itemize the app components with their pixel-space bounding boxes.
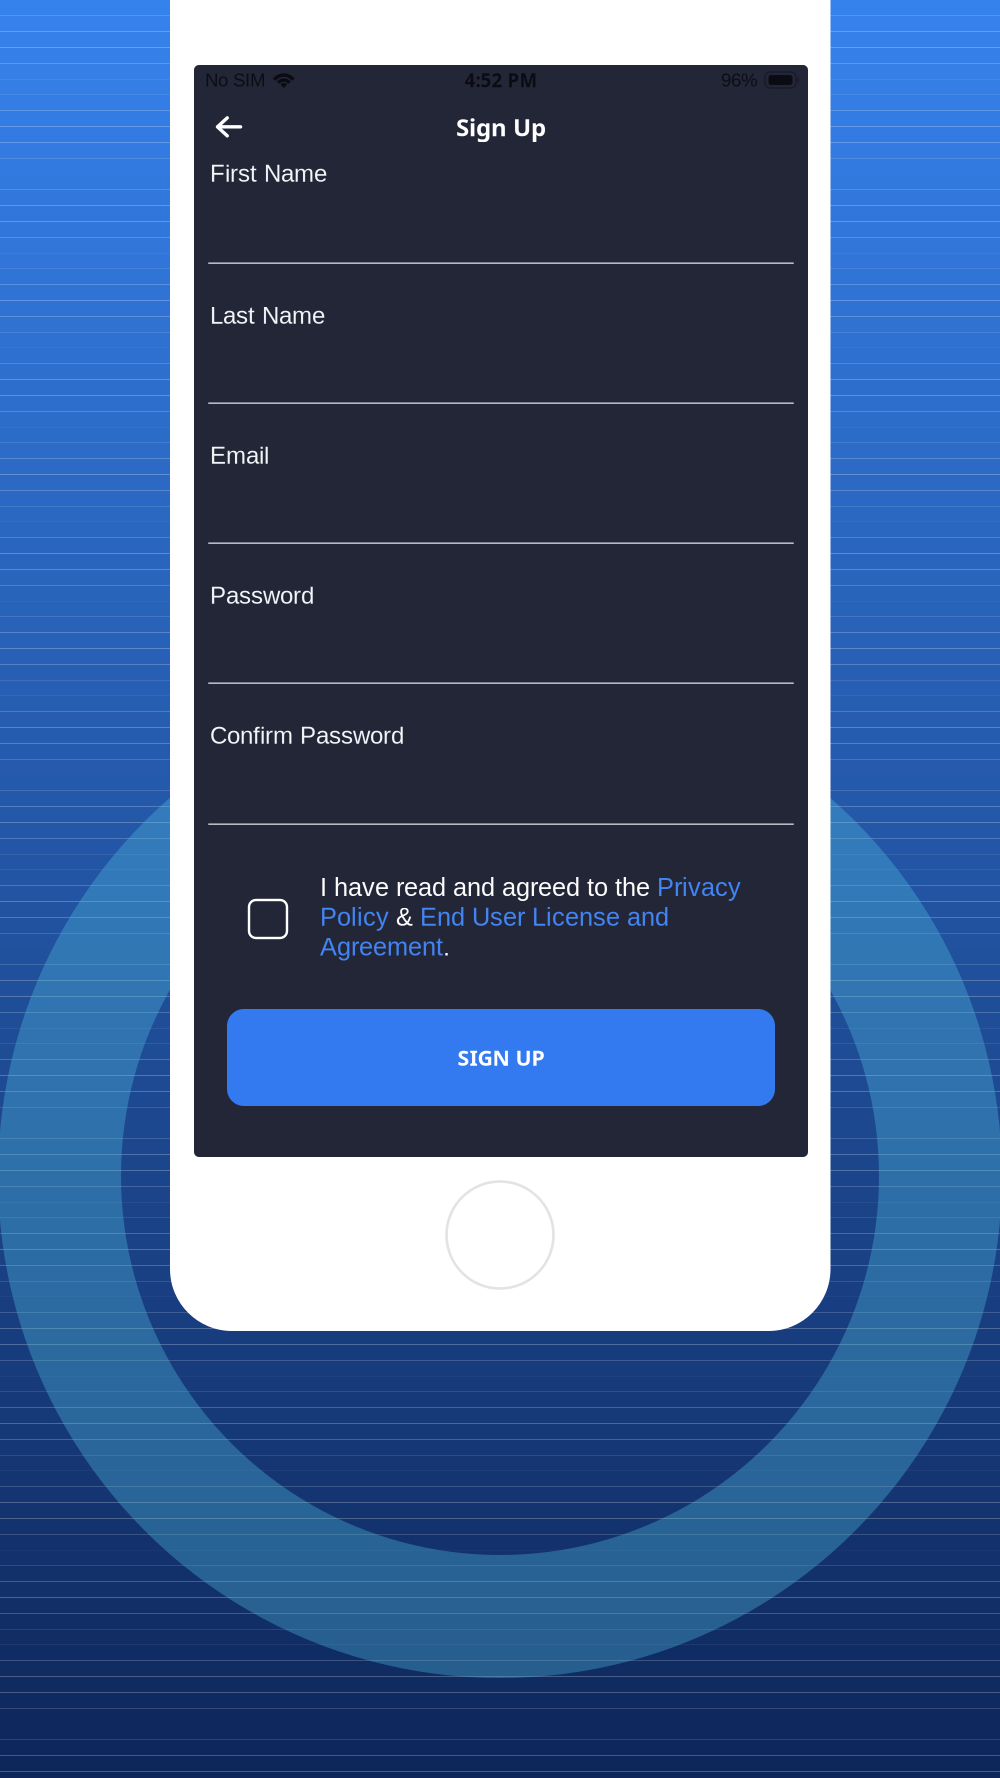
button[interactable]: Back (194, 105, 252, 149)
button[interactable]: Accept the privacy policy and licence ag… (194, 825, 320, 952)
staticText: Privacy (657, 873, 741, 901)
staticText: 4:52 PM (464, 67, 537, 93)
staticText: Last Name (210, 302, 325, 329)
staticText: Confirm Password (210, 722, 404, 749)
staticText: 96% (721, 70, 758, 90)
staticText: End User License and (420, 903, 669, 931)
staticText: First Name (210, 160, 327, 187)
button[interactable]: SIGN UP (227, 1009, 775, 1106)
staticText: No SIM (205, 70, 266, 90)
staticText: Policy (320, 903, 389, 931)
staticText: Sign Up (456, 111, 546, 143)
staticText: SIGN UP (457, 1043, 544, 1072)
staticText: Password (210, 582, 314, 609)
staticText: Email (210, 442, 269, 469)
staticText: Agreement (320, 933, 443, 961)
staticText: & (389, 903, 420, 931)
staticText: I have read and agreed to the (320, 873, 657, 901)
staticText: . (443, 933, 450, 961)
